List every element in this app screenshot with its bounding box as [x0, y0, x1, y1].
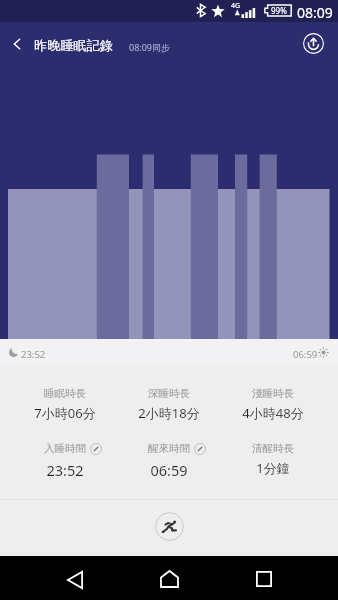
button[interactable]: Recents — [241, 564, 287, 594]
button[interactable]: 淺睡時長 — [221, 387, 325, 422]
staticText: 06:59 — [293, 348, 318, 361]
button[interactable]: 深睡時長 — [117, 387, 221, 422]
staticText: 淺睡時長 — [252, 387, 294, 400]
staticText: 1分鐘 — [256, 459, 290, 477]
staticText: 23:52 — [46, 460, 84, 480]
staticText: 昨晚睡眠記錄 — [34, 37, 114, 54]
staticText: 7小時06分 — [34, 404, 96, 422]
button[interactable]: Activity — [155, 512, 184, 541]
button[interactable]: Home — [146, 564, 192, 594]
staticText: 清醒時長 — [252, 442, 294, 455]
staticText: 睡眠時長 — [44, 387, 86, 400]
staticText: 08:09 — [297, 3, 333, 22]
staticText: 99% — [271, 5, 287, 16]
button[interactable]: 睡眠時長 — [13, 387, 117, 422]
staticText: 2小時18分 — [138, 404, 200, 422]
staticText: 深睡時長 — [148, 387, 190, 400]
button[interactable]: 醒來時間 — [117, 442, 221, 480]
staticText: 23:52 — [21, 348, 46, 361]
staticText: 4G — [231, 1, 241, 11]
staticText: 入睡時間 — [44, 442, 86, 455]
staticText: 4小時48分 — [242, 404, 304, 422]
button[interactable]: Back — [52, 565, 98, 595]
staticText: 06:59 — [150, 460, 188, 480]
staticText: 08:09同步 — [129, 41, 171, 53]
button[interactable]: Back — [0, 22, 34, 65]
button[interactable]: 清醒時長 — [221, 442, 325, 477]
staticText: 醒來時間 — [148, 442, 190, 455]
button[interactable]: 入睡時間 — [13, 442, 117, 480]
button[interactable]: Share — [288, 22, 338, 65]
